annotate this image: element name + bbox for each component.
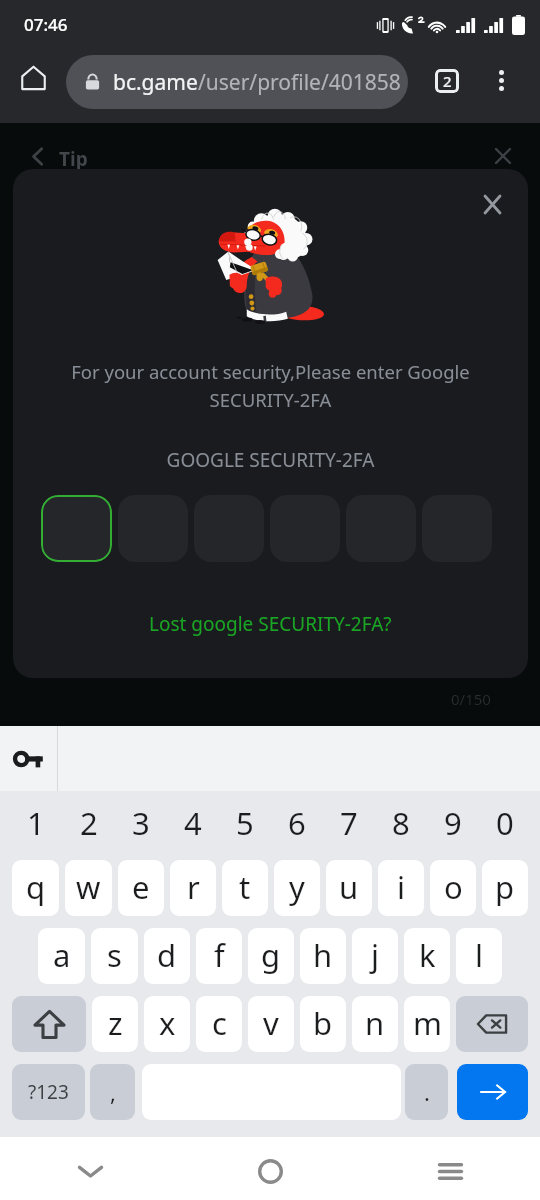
button[interactable]: ?123 [12,1064,85,1120]
staticText: /user/profile/401858 [198,68,401,97]
button[interactable]: p [482,860,528,916]
button[interactable]: 3 [118,791,164,860]
button[interactable]: z [92,996,138,1052]
staticText: Lost google SECURITY-2FA? [149,611,392,637]
staticText: 9 [444,802,462,844]
staticText: x [159,1002,176,1044]
button[interactable]: w [65,860,112,916]
button[interactable]: v [248,996,294,1052]
staticText: g [261,934,281,976]
button[interactable]: 8 [378,791,424,860]
button[interactable]: k [404,928,450,984]
button[interactable]: Recent apps [360,1142,540,1200]
staticText: i [397,866,405,908]
staticText: 8 [392,802,410,844]
staticText: b [313,1002,333,1044]
button[interactable]: f [196,928,242,984]
staticText: o [444,866,463,908]
button[interactable]: m [404,996,450,1052]
button[interactable]: 4 [170,791,216,860]
button[interactable]: , [90,1064,135,1120]
staticText: 4 [184,802,202,844]
button[interactable] [41,495,112,562]
staticText: r [187,866,200,908]
staticText: k [419,934,436,976]
staticText: 0 [496,802,514,844]
staticText: 3 [132,802,150,844]
button[interactable]: u [326,860,372,916]
button[interactable]: . [405,1064,448,1120]
button[interactable]: 5 [222,791,268,860]
staticText: 0/150 [451,689,491,709]
button[interactable]: Lost google SECURITY-2FA? [143,607,398,641]
staticText: ?123 [28,1079,69,1105]
button[interactable]: g [248,928,294,984]
button[interactable]: More options [481,60,522,101]
button[interactable]: c [196,996,242,1052]
staticText: u [339,866,359,908]
button[interactable]: y [274,860,320,916]
button[interactable]: Password suggestions [0,726,57,791]
staticText: p [495,866,515,908]
button[interactable]: Enter [457,1064,528,1120]
staticText: h [313,934,333,976]
button[interactable]: a [38,928,85,984]
button[interactable]: n [352,996,398,1052]
button[interactable]: Home [180,1142,360,1200]
staticText: 7 [340,802,358,844]
staticText: 5 [236,802,254,844]
button[interactable]: 0 [482,791,528,860]
button[interactable]: j [352,928,398,984]
button[interactable]: 1 [12,791,59,860]
staticText: 2 [80,802,98,844]
button[interactable]: Shift [12,996,86,1052]
staticText: z [108,1002,123,1044]
staticText: m [413,1002,442,1044]
staticText: l [475,934,483,976]
button[interactable]: 6 [274,791,320,860]
button[interactable]: Backspace [456,996,528,1052]
staticText: q [26,866,46,908]
button[interactable]: s [91,928,138,984]
button[interactable]: d [144,928,190,984]
button[interactable]: Tabs [426,60,467,101]
staticText: , [110,1077,116,1107]
button[interactable]: x [144,996,190,1052]
staticText: t [239,866,251,908]
button[interactable]: l [456,928,502,984]
button[interactable]: q [12,860,59,916]
button[interactable]: i [378,860,424,916]
button[interactable]: h [300,928,346,984]
button[interactable]: o [430,860,476,916]
button[interactable]: e [118,860,164,916]
button[interactable]: b [300,996,346,1052]
button[interactable]: bc.game [66,55,408,109]
staticText: v [263,1002,279,1044]
staticText: f [214,934,225,976]
staticText: c [212,1002,227,1044]
button[interactable]: r [170,860,216,916]
staticText: bc.game [113,68,198,97]
button[interactable]: t [222,860,268,916]
button[interactable]: Back [0,1142,180,1200]
button[interactable]: Close [475,187,510,222]
staticText: a [53,934,71,976]
button[interactable]: 9 [430,791,476,860]
staticText: 2 [443,71,452,91]
staticText: d [157,934,177,976]
staticText: y [289,866,305,908]
staticText: 6 [288,802,306,844]
staticText: 07:46 [24,13,68,36]
button[interactable]: 7 [326,791,372,860]
staticText: w [76,866,101,908]
button[interactable]: 2 [65,791,112,860]
button[interactable]: Home [11,55,55,99]
staticText: e [132,866,150,908]
staticText: . [424,1077,430,1107]
